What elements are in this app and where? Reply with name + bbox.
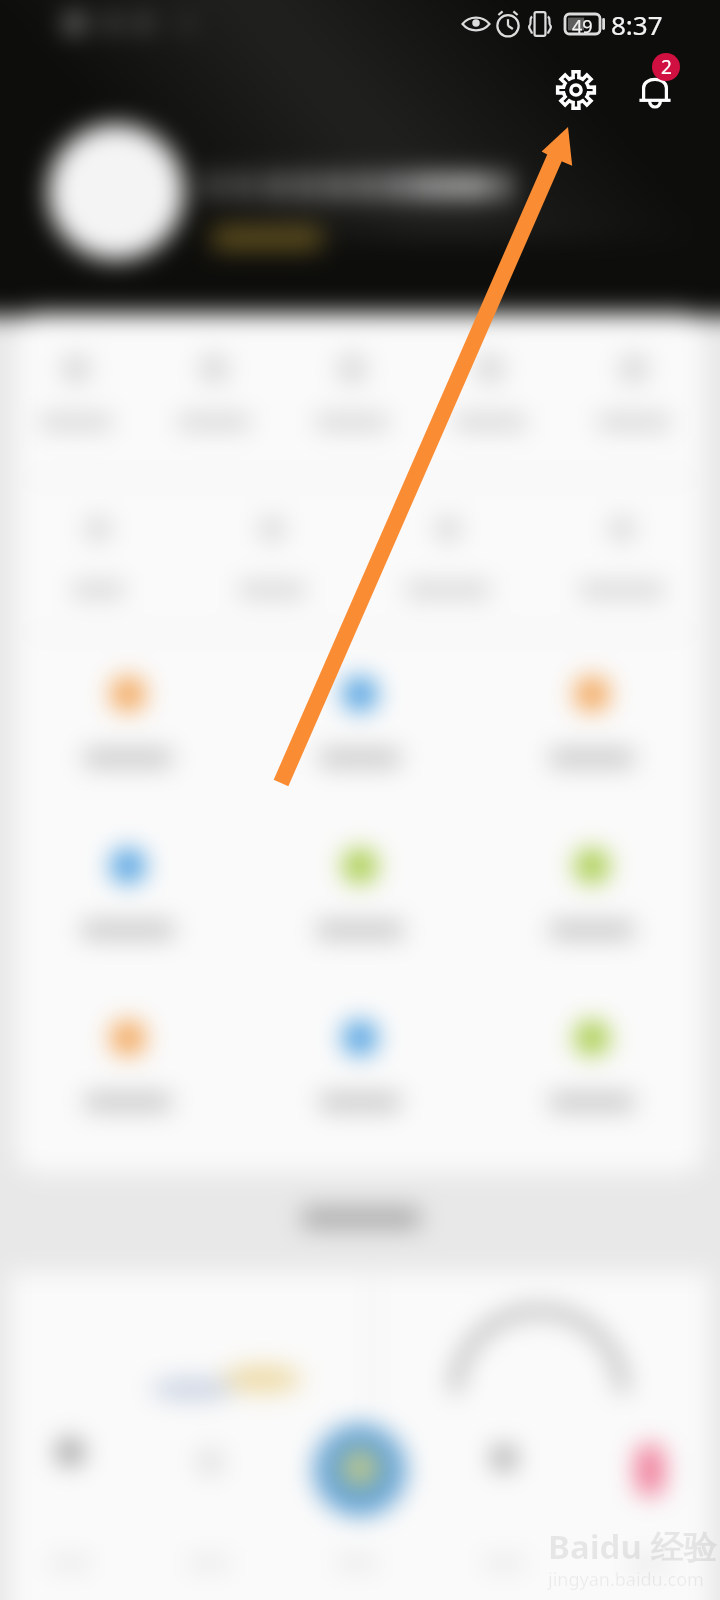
staticText: 49: [572, 14, 593, 39]
staticText: jingyan.baidu.com: [548, 1567, 704, 1592]
button[interactable]: Notifications: [620, 52, 692, 124]
button[interactable]: Settings: [542, 56, 610, 124]
staticText: 2: [661, 54, 672, 80]
staticText: Baidu 经验: [548, 1524, 717, 1569]
staticText: 8:37: [611, 7, 663, 42]
